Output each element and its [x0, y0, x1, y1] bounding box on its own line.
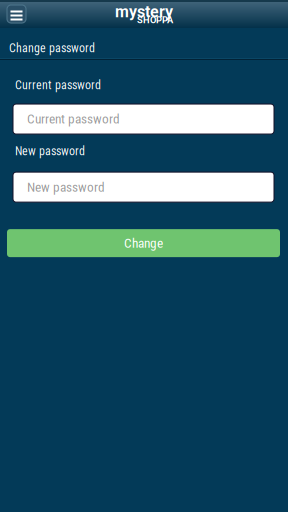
staticText: New password — [15, 144, 85, 158]
staticText: Change password — [9, 41, 95, 55]
button[interactable]: Menu — [7, 5, 26, 23]
staticText: New password — [27, 179, 105, 195]
staticText: mystery — [115, 2, 173, 21]
staticText: Current password — [15, 78, 101, 92]
staticText: SHOPPA — [137, 14, 173, 25]
staticText: Current password — [27, 111, 120, 127]
staticText: Change — [124, 235, 163, 251]
button[interactable]: Change — [7, 229, 280, 257]
